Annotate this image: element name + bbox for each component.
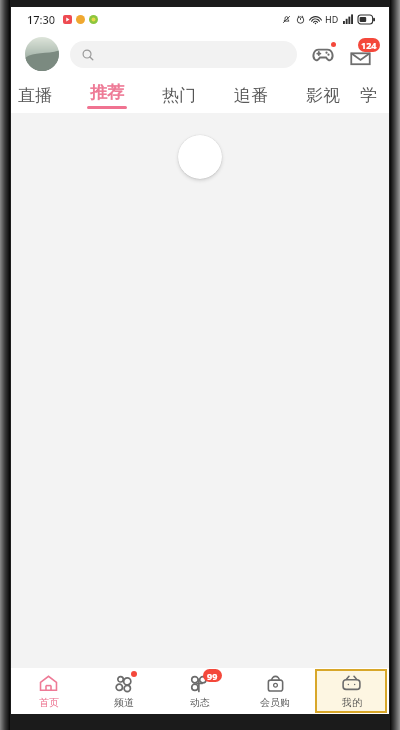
button[interactable]: 99 xyxy=(161,668,237,714)
button[interactable] xyxy=(70,41,297,68)
button[interactable]: 热门 xyxy=(143,77,215,113)
button[interactable]: 学 xyxy=(359,77,377,113)
button[interactable]: 直播 xyxy=(0,77,71,113)
button[interactable]: 追番 xyxy=(215,77,287,113)
staticText: 124 xyxy=(361,39,377,51)
button[interactable]: Profile xyxy=(25,37,59,71)
staticText: 首页 xyxy=(39,696,59,709)
button[interactable]: 影视 xyxy=(287,77,359,113)
staticText: 热门 xyxy=(162,85,196,106)
staticText: 频道 xyxy=(114,696,134,709)
button[interactable]: 频道 xyxy=(86,668,161,714)
staticText: HD xyxy=(325,13,339,25)
button[interactable]: 首页 xyxy=(11,668,86,714)
button[interactable]: 推荐 xyxy=(71,77,143,113)
button[interactable]: Messages xyxy=(345,39,375,69)
staticText: 17:30 xyxy=(27,12,56,27)
button[interactable]: Games xyxy=(309,40,337,68)
staticText: 我的 xyxy=(342,696,362,709)
staticText: 追番 xyxy=(234,85,268,106)
staticText: 直播 xyxy=(18,85,52,106)
button[interactable]: 我的 xyxy=(315,669,387,713)
staticText: 会员购 xyxy=(260,696,290,709)
staticText: 推荐 xyxy=(90,82,124,103)
staticText: 动态 xyxy=(190,696,210,709)
staticText: 影视 xyxy=(306,85,340,106)
staticText: 99 xyxy=(207,670,218,682)
button[interactable]: 会员购 xyxy=(237,668,313,714)
staticText: 学 xyxy=(360,85,377,106)
